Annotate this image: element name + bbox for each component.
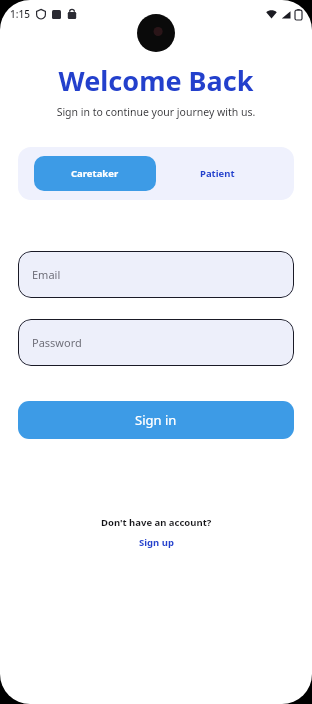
staticText: Patient (200, 167, 235, 180)
staticText: Sign in (135, 411, 177, 429)
button[interactable]: Sign in (18, 401, 294, 439)
staticText: 1:15 (10, 7, 30, 21)
button[interactable]: Patient (156, 156, 278, 191)
staticText: Password (32, 335, 82, 350)
button[interactable]: Caretaker (34, 156, 156, 191)
staticText: Email (32, 267, 61, 282)
staticText: Sign in to continue your journey with us… (0, 105, 312, 119)
button[interactable]: Password (18, 319, 294, 366)
staticText: Caretaker (71, 167, 119, 180)
staticText: Welcome Back (0, 62, 312, 99)
button[interactable]: Email (18, 251, 294, 298)
staticText: Don't have an account? (101, 516, 212, 529)
staticText: Sign up (139, 536, 174, 549)
button[interactable]: Sign up (133, 534, 180, 551)
